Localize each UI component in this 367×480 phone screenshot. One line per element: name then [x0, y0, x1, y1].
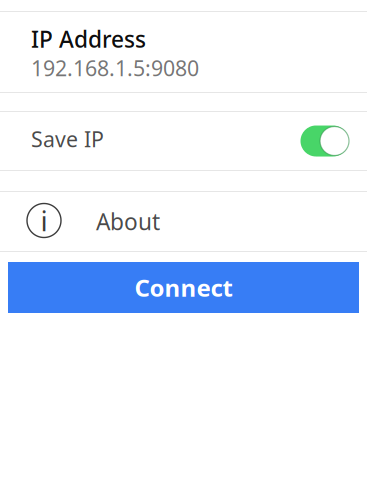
staticText: Connect: [134, 272, 232, 303]
staticText: i: [40, 202, 47, 239]
button[interactable]: Save IP: [0, 112, 367, 170]
staticText: 192.168.1.5:9080: [31, 54, 199, 82]
button[interactable]: Connect: [8, 262, 359, 313]
staticText: About: [96, 206, 160, 236]
staticText: Save IP: [31, 125, 104, 153]
button[interactable]: IP Address: [0, 12, 367, 92]
button[interactable]: i: [0, 192, 367, 251]
staticText: IP Address: [31, 24, 146, 54]
